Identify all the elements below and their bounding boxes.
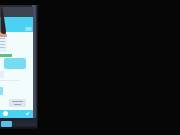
button[interactable]: Send [25,111,30,116]
button[interactable] [0,36,7,52]
button[interactable] [4,58,26,69]
button[interactable] [0,17,33,32]
button[interactable]: Add attachment [3,111,8,116]
